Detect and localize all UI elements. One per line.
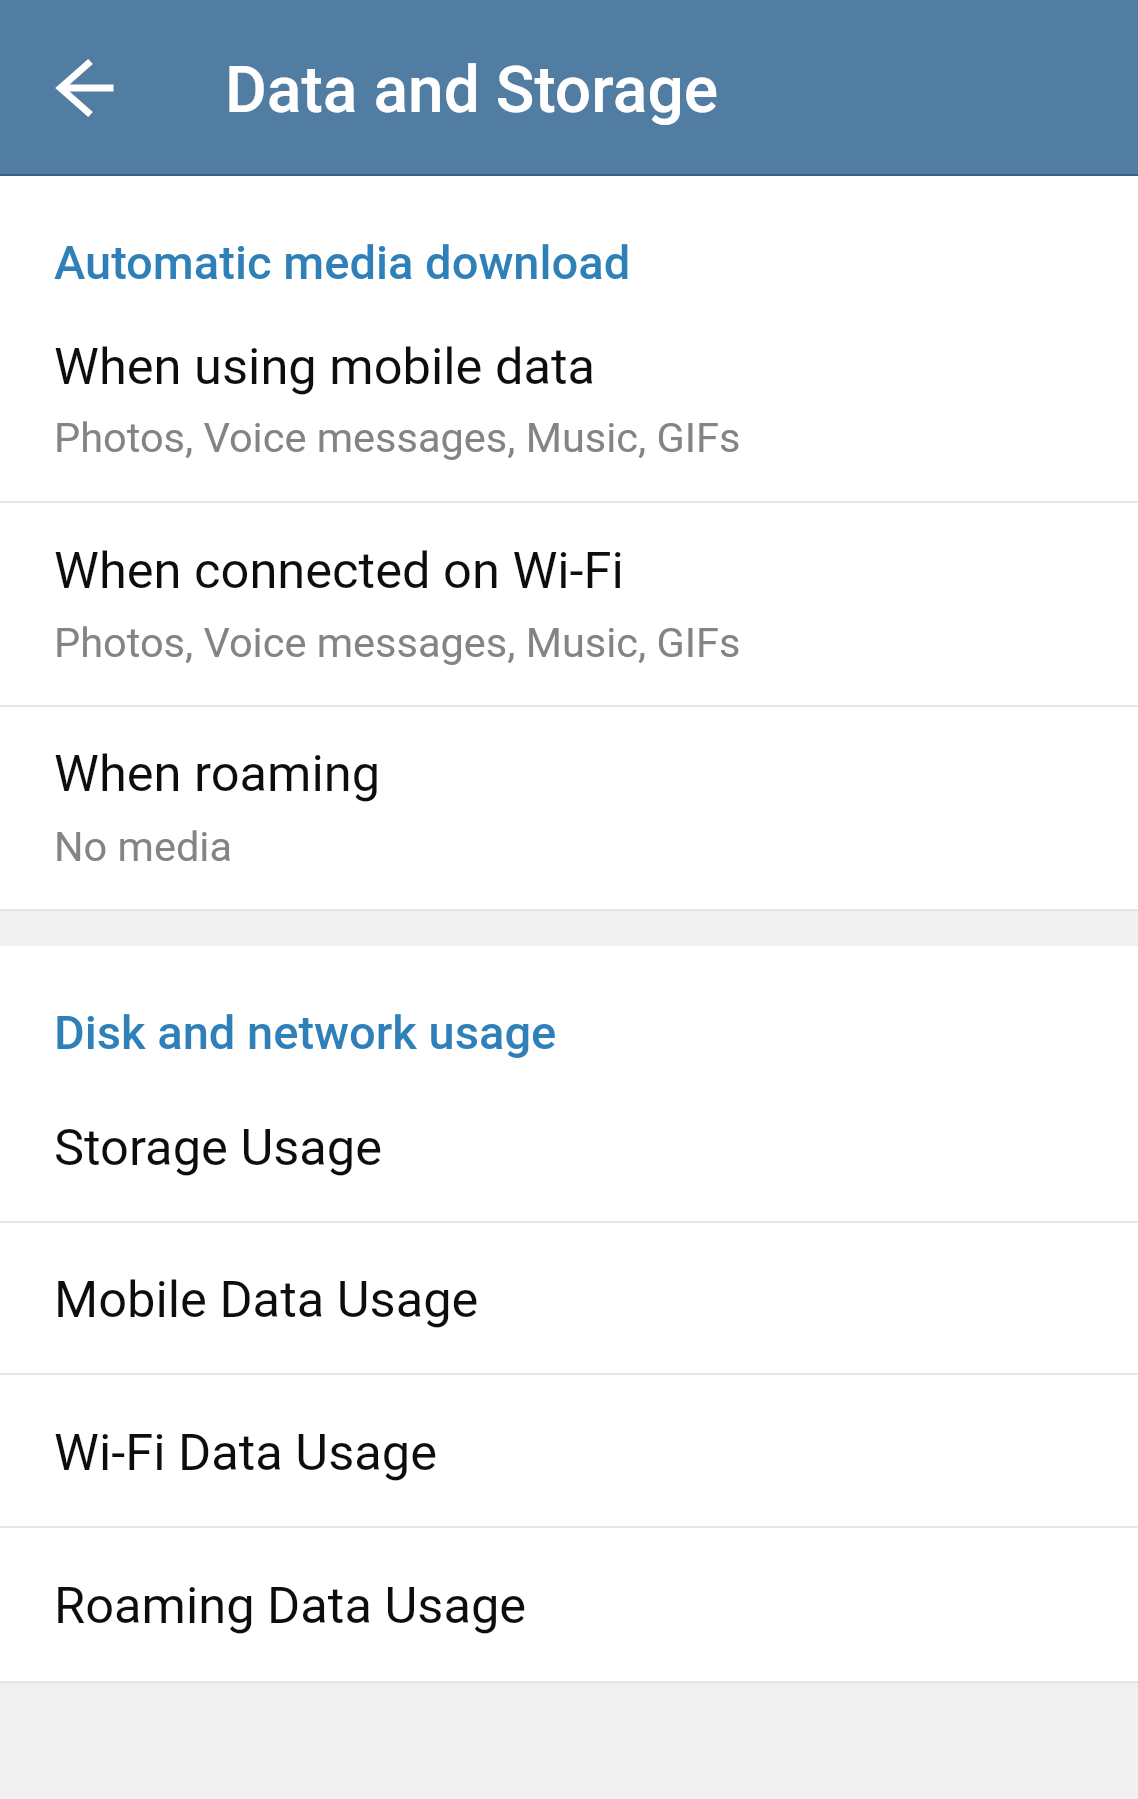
button[interactable]: Storage Usage (0, 1068, 1138, 1221)
button[interactable]: Wi-Fi Data Usage (0, 1375, 1138, 1526)
button[interactable]: Roaming Data Usage (0, 1528, 1138, 1681)
button[interactable]: Back (0, 0, 145, 176)
staticText: Wi-Fi Data Usage (54, 1423, 438, 1482)
staticText: Roaming Data Usage (54, 1576, 527, 1635)
staticText: No media (54, 822, 233, 871)
staticText: Data and Storage (225, 53, 719, 128)
staticText: Photos, Voice messages, Music, GIFs (54, 413, 741, 462)
button[interactable]: Mobile Data Usage (0, 1223, 1138, 1373)
staticText: When using mobile data (54, 337, 596, 396)
button[interactable]: When connected on Wi-Fi (0, 503, 1138, 705)
staticText: Photos, Voice messages, Music, GIFs (54, 618, 741, 667)
staticText: Mobile Data Usage (54, 1270, 479, 1329)
staticText: When connected on Wi-Fi (54, 541, 624, 600)
button[interactable]: When roaming (0, 707, 1138, 909)
staticText: Automatic media download (54, 235, 631, 290)
staticText: When roaming (54, 744, 381, 803)
staticText: Disk and network usage (54, 1005, 557, 1060)
button[interactable]: When using mobile data (0, 296, 1138, 501)
staticText: Storage Usage (54, 1118, 383, 1177)
